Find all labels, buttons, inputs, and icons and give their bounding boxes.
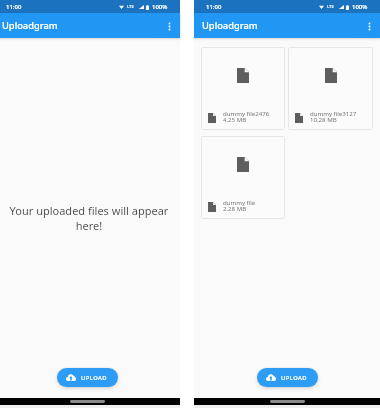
staticText: 11:00 [6,3,22,11]
staticText: LTE [127,4,134,10]
staticText: dummy file2476 4.25 MB [223,109,270,123]
button[interactable]: dummy file2476 4.25 MB [201,47,285,130]
button[interactable]: dummy file3127 10.28 MB [288,47,373,130]
button[interactable]: UPLOAD [57,368,118,387]
staticText: Uploadgram [202,19,258,32]
staticText: dummy file 2.28 MB [223,198,256,212]
button[interactable]: UPLOAD [257,368,318,387]
staticText: dummy file3127 10.28 MB [310,109,357,123]
button[interactable]: More options [359,16,379,36]
button[interactable]: dummy file 2.28 MB [201,136,285,219]
staticText: Uploadgram [2,19,58,32]
staticText: 100% [352,3,368,11]
staticText: Your uploaded files will appear here! [9,203,169,233]
staticText: UPLOAD [281,374,307,382]
staticText: LTE [327,4,334,10]
button[interactable]: More options [159,16,179,36]
staticText: UPLOAD [81,374,107,382]
staticText: 11:00 [206,3,222,11]
staticText: 100% [152,3,168,11]
